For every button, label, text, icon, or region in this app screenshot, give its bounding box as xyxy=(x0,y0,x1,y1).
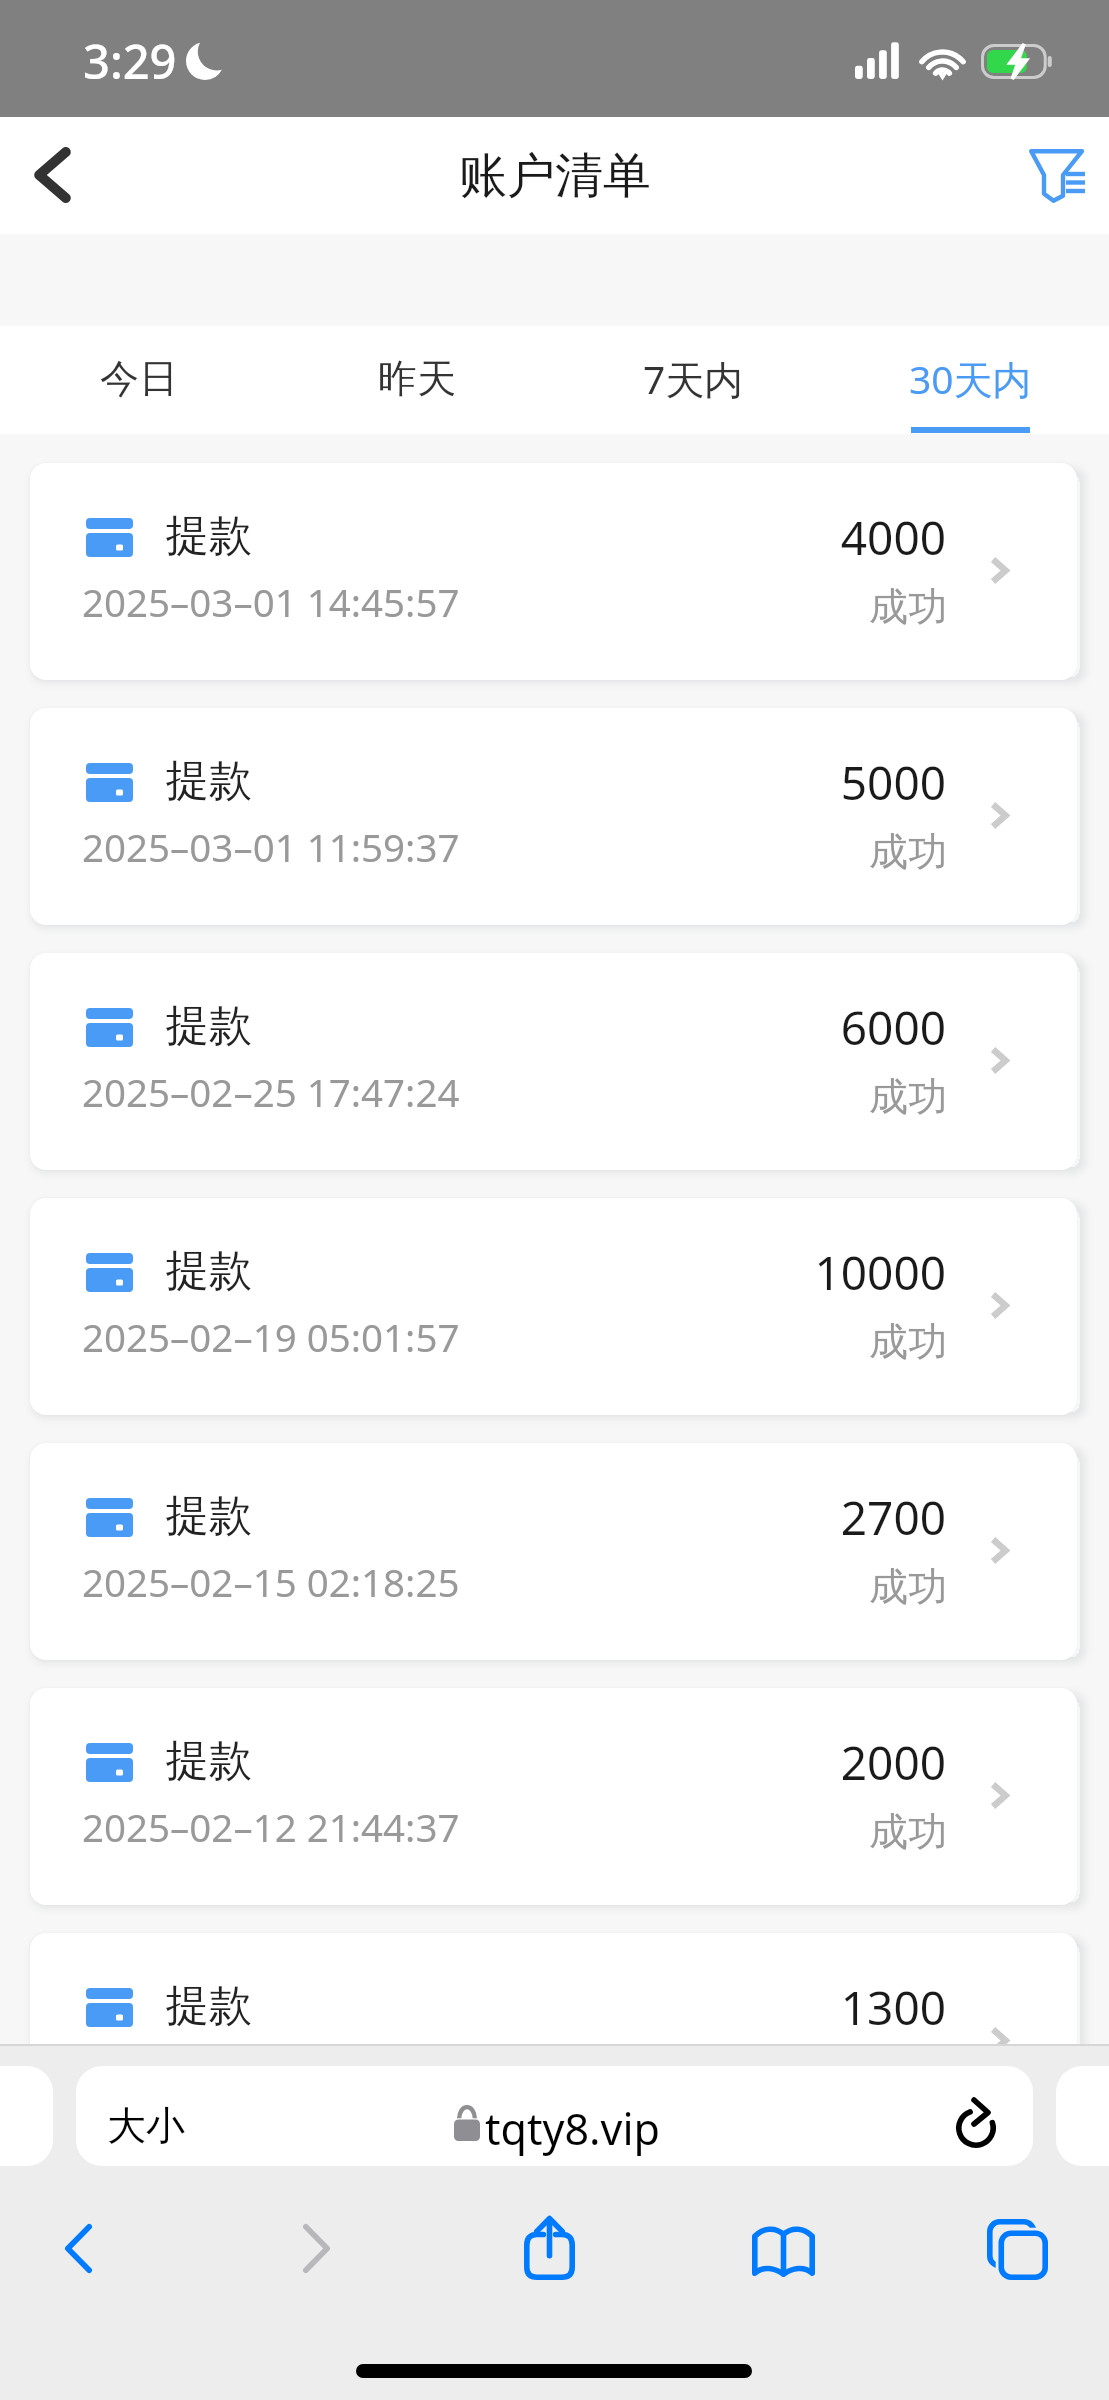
staticText: 4000 xyxy=(840,506,946,569)
button[interactable]: Bookmarks xyxy=(716,2194,851,2307)
staticText: 大小 xyxy=(107,2101,185,2150)
staticText: 成功 xyxy=(869,1562,947,1611)
staticText: 2025–02–19 05:01:57 xyxy=(82,1311,460,1363)
staticText: 2025–02–25 17:47:24 xyxy=(82,1066,460,1118)
button[interactable]: Tabs xyxy=(951,2189,1084,2310)
staticText: 成功 xyxy=(869,827,947,876)
staticText: 提款 xyxy=(166,509,252,563)
button[interactable]: 7天内 xyxy=(555,326,832,434)
button[interactable]: Forward xyxy=(267,2194,366,2303)
button[interactable]: 提款 xyxy=(30,708,1077,925)
staticText: 账户清单 xyxy=(459,146,651,206)
button[interactable]: 提款 xyxy=(30,1933,1077,2150)
staticText: 成功 xyxy=(869,1807,947,1856)
staticText: 成功 xyxy=(869,582,947,631)
staticText: 2025–02–12 21:44:37 xyxy=(82,1801,460,1853)
staticText: 提款 xyxy=(166,1979,252,2033)
button[interactable]: Filter xyxy=(999,117,1109,234)
staticText: 提款 xyxy=(166,1244,252,1298)
button[interactable]: 昨天 xyxy=(278,326,555,434)
staticText: 10000 xyxy=(814,1241,946,1304)
staticText: 1300 xyxy=(840,1976,946,2039)
staticText: 3:29 xyxy=(83,29,177,93)
button[interactable]: 提款 xyxy=(30,1443,1077,1660)
button[interactable]: Back xyxy=(0,117,110,234)
staticText: 2025–02–15 02:18:25 xyxy=(82,1556,460,1608)
staticText: 今日 xyxy=(100,354,178,403)
staticText: 提款 xyxy=(166,1489,252,1543)
button[interactable]: 提款 xyxy=(30,463,1077,680)
button[interactable]: 提款 xyxy=(30,1688,1077,1905)
staticText: 成功 xyxy=(869,2052,947,2101)
button[interactable]: Share xyxy=(488,2186,611,2310)
staticText: 提款 xyxy=(166,1734,252,1788)
staticText: tqty8.vip xyxy=(485,2099,660,2158)
staticText: 2700 xyxy=(840,1486,946,1549)
staticText: 30天内 xyxy=(909,352,1032,405)
button[interactable]: 提款 xyxy=(30,953,1077,1170)
staticText: 成功 xyxy=(869,1317,947,1366)
button[interactable]: 提款 xyxy=(30,1198,1077,1415)
staticText: 5000 xyxy=(840,751,946,814)
staticText: 提款 xyxy=(166,999,252,1053)
staticText: 提款 xyxy=(166,754,252,808)
staticText: 2025–03–01 14:45:57 xyxy=(82,576,460,628)
button[interactable]: 今日 xyxy=(0,326,278,434)
button[interactable]: Reload xyxy=(938,2084,1008,2154)
staticText: 7天内 xyxy=(643,352,744,405)
staticText: 成功 xyxy=(869,1072,947,1121)
staticText: 2025–03–01 11:59:37 xyxy=(82,821,460,873)
button[interactable]: Back xyxy=(29,2194,128,2303)
button[interactable]: 30天内 xyxy=(832,326,1109,434)
staticText: 昨天 xyxy=(378,354,456,403)
button[interactable]: 大小 xyxy=(76,2066,1033,2166)
staticText: 2000 xyxy=(840,1731,946,1794)
staticText: 2025–02–08 10:12:09 xyxy=(82,2046,460,2098)
staticText: 6000 xyxy=(840,996,946,1059)
